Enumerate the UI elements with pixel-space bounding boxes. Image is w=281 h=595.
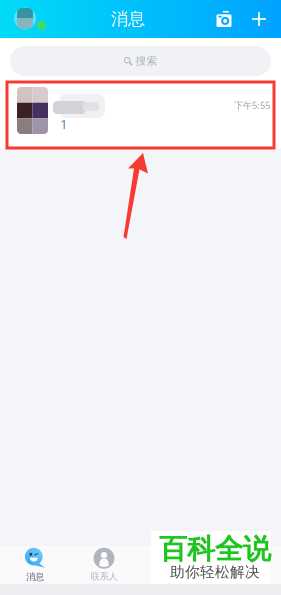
staticText: 联系人 <box>90 571 117 582</box>
button[interactable]: Profile <box>6 2 51 35</box>
staticText: 助你轻松解决 <box>170 563 260 581</box>
staticText: 1 <box>60 115 68 133</box>
button[interactable]: 搜索 <box>0 38 281 80</box>
staticText: 下午5:55 <box>234 99 270 111</box>
button[interactable]: 联系人 <box>70 546 138 584</box>
button[interactable]: Add <box>243 0 275 38</box>
button[interactable]: 消息 <box>0 546 70 584</box>
staticText: 消息 <box>111 8 145 30</box>
staticText: 百科全说 <box>159 532 271 566</box>
button[interactable]: Camera <box>205 0 243 38</box>
staticText: 搜索 <box>135 54 157 67</box>
button[interactable]: 1 <box>0 80 281 148</box>
staticText: 消息 <box>26 571 44 583</box>
